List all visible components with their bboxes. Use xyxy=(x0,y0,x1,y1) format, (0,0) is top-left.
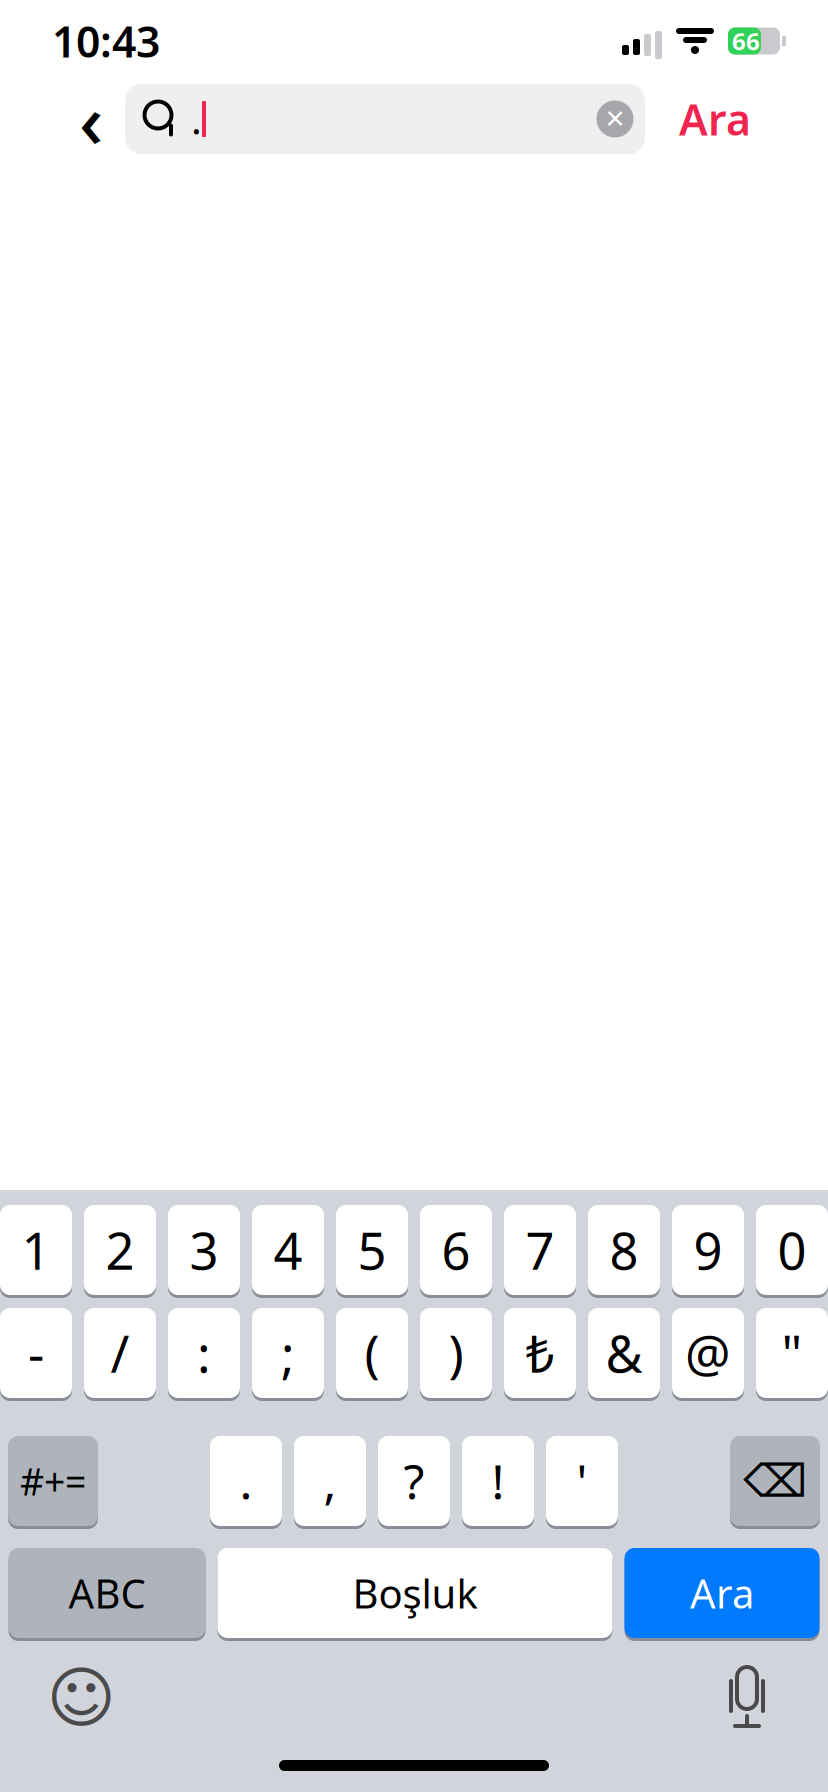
button[interactable]: 5 xyxy=(336,1203,408,1297)
button[interactable]: Back xyxy=(57,83,125,155)
button[interactable]: 1 xyxy=(0,1203,72,1297)
button[interactable]: #+= xyxy=(8,1434,98,1528)
staticText: ) xyxy=(448,1319,463,1387)
staticText: ‹ xyxy=(79,69,103,169)
button[interactable]: ' xyxy=(546,1434,618,1528)
staticText: 66 xyxy=(732,25,760,57)
button[interactable]: 9 xyxy=(672,1203,744,1297)
staticText: 1 xyxy=(21,1216,50,1284)
staticText: , xyxy=(323,1449,336,1513)
staticText: ( xyxy=(364,1319,379,1387)
staticText: ' xyxy=(576,1449,587,1513)
button[interactable]: ! xyxy=(462,1434,534,1528)
staticText: . xyxy=(191,92,202,145)
button[interactable]: . xyxy=(210,1434,282,1528)
button[interactable]: @ xyxy=(672,1306,744,1400)
staticText: - xyxy=(28,1319,44,1387)
button[interactable]: - xyxy=(0,1306,72,1400)
staticText: 5 xyxy=(357,1216,386,1284)
button[interactable]: Clear text xyxy=(587,89,643,149)
button[interactable]: ; xyxy=(252,1306,324,1400)
staticText: @ xyxy=(685,1319,731,1387)
button[interactable]: ) xyxy=(420,1306,492,1400)
button[interactable]: ABC xyxy=(8,1546,205,1640)
button[interactable]: & xyxy=(588,1306,660,1400)
staticText: 4 xyxy=(273,1216,302,1284)
button[interactable]: Dictation xyxy=(702,1656,792,1740)
button[interactable]: Ara xyxy=(645,84,785,154)
button[interactable]: ( xyxy=(336,1306,408,1400)
staticText: ! xyxy=(491,1449,504,1513)
staticText: 0 xyxy=(777,1216,806,1284)
staticText: ☺ xyxy=(46,1660,115,1736)
staticText: Ara xyxy=(690,1566,754,1619)
button[interactable]: ? xyxy=(378,1434,450,1528)
staticText: ₺ xyxy=(525,1319,554,1387)
staticText: #+= xyxy=(20,1456,86,1506)
button[interactable]: ₺ xyxy=(504,1306,576,1400)
button[interactable]: : xyxy=(168,1306,240,1400)
button[interactable]: / xyxy=(84,1306,156,1400)
button[interactable]: Emoji keyboard xyxy=(36,1656,126,1740)
staticText: 6 xyxy=(441,1216,470,1284)
button[interactable]: 2 xyxy=(84,1203,156,1297)
staticText: Ara xyxy=(679,91,751,147)
button[interactable]: , xyxy=(294,1434,366,1528)
button[interactable]: 0 xyxy=(756,1203,828,1297)
button[interactable]: 7 xyxy=(504,1203,576,1297)
button[interactable]: 4 xyxy=(252,1203,324,1297)
staticText: 7 xyxy=(525,1216,554,1284)
staticText: & xyxy=(605,1319,642,1387)
staticText: 10:43 xyxy=(52,13,160,69)
button[interactable]: " xyxy=(756,1306,828,1400)
staticText: ABC xyxy=(68,1566,145,1619)
staticText: : xyxy=(197,1319,211,1387)
staticText: ✕ xyxy=(604,105,625,133)
staticText: ? xyxy=(403,1449,424,1513)
button[interactable]: 3 xyxy=(168,1203,240,1297)
button[interactable]: ⌫ xyxy=(730,1434,820,1528)
staticText: 8 xyxy=(609,1216,638,1284)
staticText: 9 xyxy=(693,1216,722,1284)
staticText: " xyxy=(781,1319,802,1387)
staticText: ⌫ xyxy=(743,1455,807,1507)
staticText: ; xyxy=(281,1319,295,1387)
staticText: 3 xyxy=(189,1216,218,1284)
staticText: Boşluk xyxy=(352,1566,477,1619)
staticText: . xyxy=(239,1449,252,1513)
staticText: 2 xyxy=(105,1216,134,1284)
button[interactable]: 8 xyxy=(588,1203,660,1297)
button[interactable]: Ara xyxy=(624,1546,819,1640)
button[interactable]: Boşluk xyxy=(217,1546,612,1640)
button[interactable]: 6 xyxy=(420,1203,492,1297)
staticText: / xyxy=(110,1319,129,1387)
